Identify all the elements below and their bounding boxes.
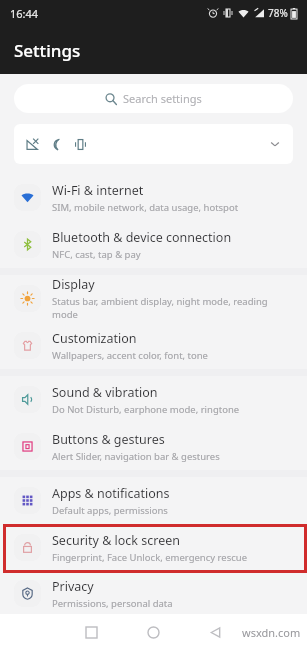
button[interactable]: Bluetooth & device connection bbox=[0, 221, 307, 268]
staticText: Privacy bbox=[52, 578, 94, 595]
staticText: Wi-Fi & internet bbox=[52, 182, 144, 199]
staticText: SIM, mobile network, data usage, hotspot bbox=[52, 201, 239, 214]
staticText: NFC, cast, tap & pay bbox=[52, 248, 141, 261]
staticText: wsxdn.com bbox=[242, 625, 301, 640]
staticText: Wallpapers, accent color, font, tone bbox=[52, 349, 208, 362]
staticText: Security & lock screen bbox=[52, 532, 181, 549]
button[interactable]: Apps & notifications bbox=[0, 477, 307, 524]
staticText: 16:44 bbox=[10, 6, 39, 21]
staticText: Display bbox=[52, 276, 95, 293]
button[interactable]: Privacy bbox=[0, 573, 307, 614]
button[interactable]: Recent apps bbox=[76, 617, 106, 647]
staticText: Permissions, personal data bbox=[52, 597, 173, 610]
staticText: Settings bbox=[14, 39, 81, 62]
button[interactable]: Wi-Fi & internet bbox=[0, 174, 307, 221]
staticText: Do Not Disturb, earphone mode, ringtone bbox=[52, 403, 240, 416]
button[interactable]: Buttons & gestures bbox=[0, 423, 307, 470]
staticText: Apps & notifications bbox=[52, 485, 170, 502]
staticText: Default apps, permissions bbox=[52, 504, 168, 517]
staticText: Search settings bbox=[123, 91, 202, 106]
button[interactable] bbox=[14, 124, 293, 164]
staticText: Alert Slider, navigation bar & gestures bbox=[52, 450, 220, 463]
button[interactable]: Display bbox=[0, 275, 307, 322]
staticText: 78% bbox=[268, 6, 288, 20]
staticText: Customization bbox=[52, 330, 137, 347]
button[interactable]: Customization bbox=[0, 322, 307, 369]
staticText: Status bar, ambient display, night mode,… bbox=[52, 295, 295, 321]
button[interactable]: Security & lock screen bbox=[0, 524, 307, 571]
button[interactable]: Home bbox=[138, 617, 168, 647]
staticText: Buttons & gestures bbox=[52, 431, 165, 448]
staticText: Fingerprint, Face Unlock, emergency resc… bbox=[52, 551, 248, 564]
button[interactable]: Search settings bbox=[14, 84, 293, 113]
staticText: Sound & vibration bbox=[52, 384, 158, 401]
button[interactable]: Sound & vibration bbox=[0, 376, 307, 423]
button[interactable]: Back bbox=[200, 617, 230, 647]
staticText: Bluetooth & device connection bbox=[52, 229, 232, 246]
